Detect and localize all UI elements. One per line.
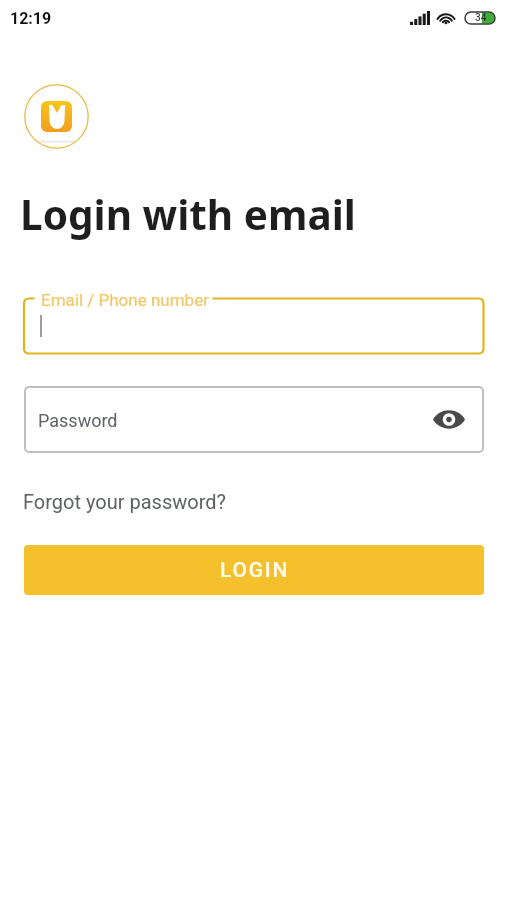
button[interactable]: LOGIN [24,545,484,595]
staticText: Login with email [20,187,356,242]
staticText: LOGIN [220,558,290,583]
staticText: 34 [475,12,487,24]
staticText: Password [38,410,118,431]
button[interactable]: Password [24,386,484,453]
staticText: Email / Phone number [41,290,209,310]
button[interactable]: Forgot your password? [23,490,226,513]
button[interactable]: Show password [431,401,467,437]
staticText: 12:19 [10,9,52,28]
button[interactable]: Email / Phone number [24,290,484,354]
